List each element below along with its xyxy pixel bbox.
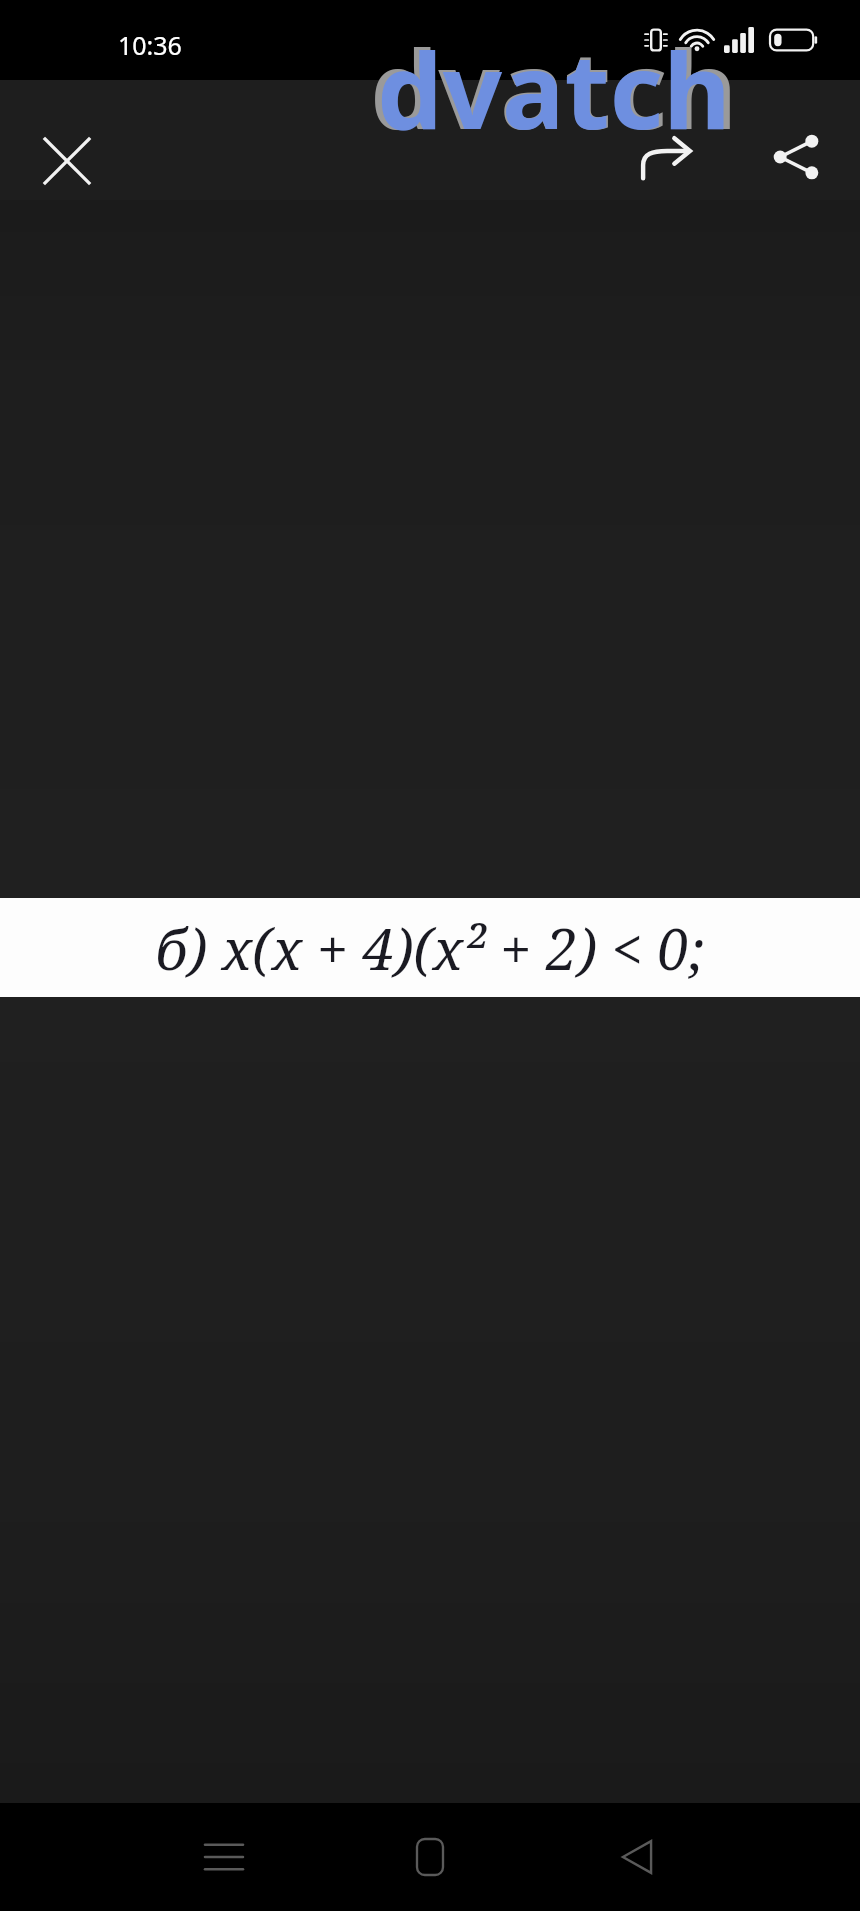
- button[interactable]: Recent apps: [164, 1817, 284, 1897]
- button[interactable]: Share: [750, 114, 842, 200]
- button[interactable]: Close: [22, 123, 112, 199]
- staticText: dvatch: [377, 18, 731, 160]
- button[interactable]: Home: [370, 1817, 490, 1897]
- staticText: dvatch: [370, 14, 738, 161]
- staticText: б) x(x + 4)(x² + 2) < 0;: [0, 910, 860, 986]
- button[interactable]: Back: [577, 1817, 697, 1897]
- button[interactable]: Forward: [620, 118, 712, 198]
- staticText: 10:36: [118, 28, 182, 62]
